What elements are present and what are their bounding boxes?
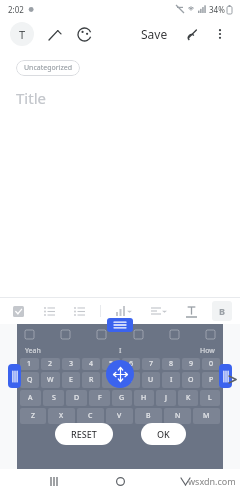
staticText: P <box>209 375 214 385</box>
button[interactable]: 2 <box>41 358 60 370</box>
staticText: 6 <box>129 359 134 369</box>
staticText: L <box>208 393 212 403</box>
button[interactable]: E <box>62 372 80 388</box>
staticText: C <box>88 411 93 421</box>
button[interactable]: Z <box>20 408 46 424</box>
staticText: Uncategorized <box>24 63 72 73</box>
button[interactable]: Text format <box>181 301 201 321</box>
button[interactable]: Save <box>137 22 172 46</box>
button[interactable]: Recents <box>45 471 65 491</box>
staticText: T <box>19 27 26 42</box>
button[interactable]: Checklist <box>8 301 28 321</box>
staticText: W <box>47 375 54 385</box>
staticText: Save <box>141 26 168 42</box>
button[interactable]: Keyboard tool 3 <box>132 328 145 341</box>
button[interactable]: Keyboard handle <box>107 318 133 332</box>
button[interactable]: O <box>182 372 200 388</box>
staticText: K <box>186 393 191 403</box>
button[interactable]: Draw <box>44 24 64 44</box>
button[interactable]: R <box>82 372 100 388</box>
staticText: 7 <box>149 359 154 369</box>
button[interactable]: T <box>102 372 120 388</box>
button[interactable]: Q <box>20 372 39 388</box>
button[interactable]: 6 <box>122 358 140 370</box>
button[interactable]: Bold <box>212 301 232 321</box>
button[interactable]: J <box>156 390 176 406</box>
button[interactable]: S <box>43 390 64 406</box>
staticText: E <box>69 375 73 385</box>
button[interactable]: OK <box>141 423 186 445</box>
button[interactable]: Keyboard tool 4 <box>168 328 181 341</box>
button[interactable]: RESET <box>55 423 113 445</box>
button[interactable]: Attach <box>182 24 202 44</box>
button[interactable]: Uncategorized <box>16 60 80 76</box>
button[interactable]: A <box>20 390 41 406</box>
staticText: I <box>119 346 122 356</box>
staticText: 3 <box>69 359 74 369</box>
staticText: O <box>188 375 194 385</box>
button[interactable]: Text mode <box>10 22 34 46</box>
staticText: Yeah <box>25 346 41 356</box>
button[interactable]: 9 <box>182 358 200 370</box>
button[interactable]: 8 <box>162 358 180 370</box>
button[interactable]: Keyboard tool 1 <box>59 328 72 341</box>
button[interactable]: Home <box>110 471 130 491</box>
button[interactable]: Alignment <box>147 299 171 323</box>
button[interactable]: C <box>77 408 104 424</box>
button[interactable]: D <box>66 390 87 406</box>
button[interactable]: More options <box>210 24 230 44</box>
button[interactable]: Palette <box>74 24 94 44</box>
staticText: B <box>219 305 225 317</box>
button[interactable]: G <box>112 390 132 406</box>
staticText: H <box>141 393 147 403</box>
staticText: X <box>59 411 64 421</box>
staticText: 4 <box>89 359 94 369</box>
staticText: R <box>89 375 94 385</box>
button[interactable]: L <box>200 390 220 406</box>
button[interactable]: Back <box>175 471 195 491</box>
button[interactable]: W <box>41 372 60 388</box>
button[interactable]: 1 <box>20 358 39 370</box>
button[interactable]: Keyboard tool 0 <box>23 328 36 341</box>
button[interactable]: Keyboard tool 2 <box>95 328 108 341</box>
button[interactable]: F <box>89 390 110 406</box>
button[interactable]: P <box>202 372 220 388</box>
button[interactable]: Keyboard tool 5 <box>204 328 217 341</box>
staticText: 1 <box>27 359 32 369</box>
staticText: RESET <box>71 428 97 440</box>
staticText: Y <box>129 375 133 385</box>
staticText: M <box>203 411 210 421</box>
button[interactable]: H <box>134 390 154 406</box>
button[interactable]: Next <box>225 372 239 386</box>
staticText: 5 <box>109 359 114 369</box>
button[interactable]: U <box>142 372 160 388</box>
button[interactable]: Resize left <box>8 364 21 388</box>
button[interactable]: 5 <box>102 358 120 370</box>
button[interactable]: List <box>69 301 89 321</box>
button[interactable]: 7 <box>142 358 160 370</box>
button[interactable]: 0 <box>202 358 220 370</box>
button[interactable]: Resize right <box>219 364 232 388</box>
button[interactable]: B <box>135 408 162 424</box>
staticText: 2:02 <box>8 4 24 15</box>
staticText: Z <box>31 411 36 421</box>
staticText: 8 <box>169 359 174 369</box>
staticText: 9 <box>189 359 194 369</box>
button[interactable]: V <box>106 408 133 424</box>
staticText: U <box>148 375 154 385</box>
button[interactable]: List <box>39 301 59 321</box>
staticText: A <box>28 393 33 403</box>
button[interactable]: I <box>162 372 180 388</box>
staticText: Q <box>27 375 33 385</box>
button[interactable]: M <box>193 408 220 424</box>
staticText: V <box>117 411 122 421</box>
button[interactable]: X <box>48 408 75 424</box>
button[interactable]: Text size <box>112 299 136 323</box>
button[interactable]: K <box>178 390 198 406</box>
button[interactable]: Move keyboard <box>106 360 134 388</box>
button[interactable]: N <box>164 408 191 424</box>
button[interactable]: 4 <box>82 358 100 370</box>
button[interactable]: Y <box>122 372 140 388</box>
button[interactable]: 3 <box>62 358 80 370</box>
staticText: G <box>119 393 125 403</box>
